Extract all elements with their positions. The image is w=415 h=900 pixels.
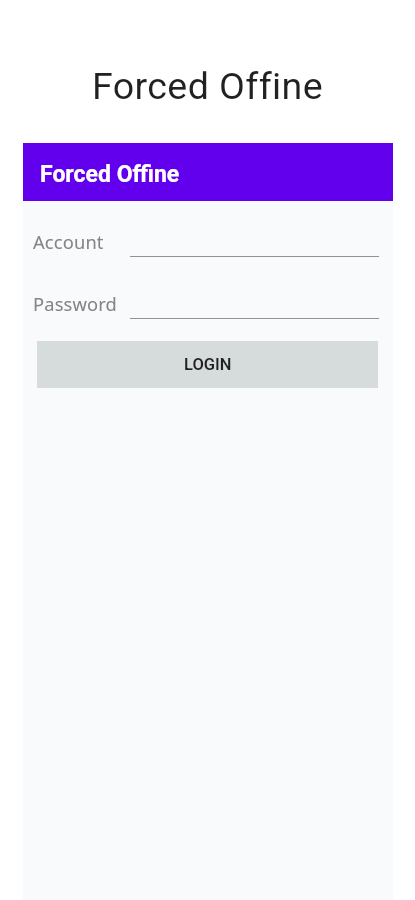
- staticText: Account: [33, 229, 104, 254]
- button[interactable]: Password input: [130, 286, 379, 320]
- staticText: LOGIN: [184, 355, 232, 374]
- button[interactable]: LOGIN: [37, 341, 378, 388]
- staticText: Password: [33, 291, 117, 316]
- button[interactable]: Account input: [130, 224, 379, 258]
- staticText: Forced Offine: [40, 161, 180, 188]
- staticText: Forced Offine: [0, 64, 415, 108]
